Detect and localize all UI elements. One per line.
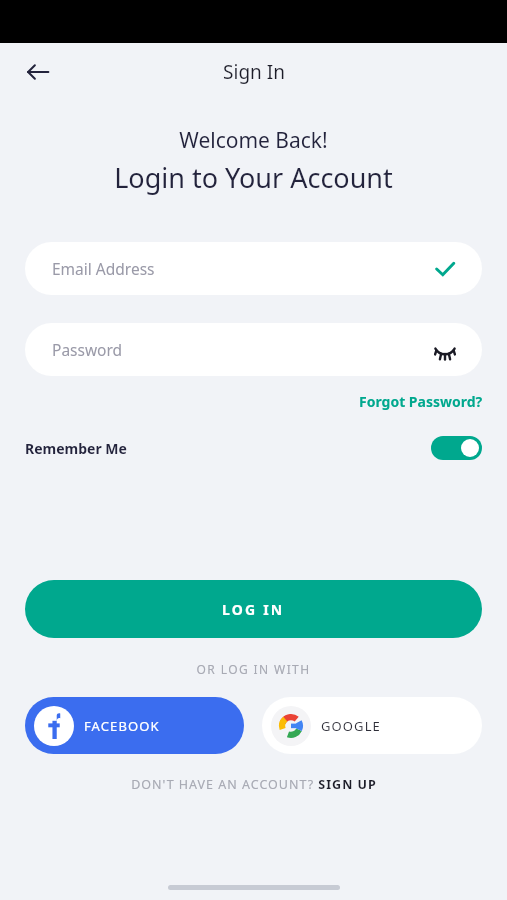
button[interactable]: Show password: [430, 335, 460, 365]
button[interactable]: Forgot Password?: [357, 390, 485, 413]
staticText: FACEBOOK: [84, 717, 160, 735]
staticText: DON'T HAVE AN ACCOUNT? SIGN UP: [131, 776, 377, 793]
staticText: Email Address: [52, 258, 155, 279]
staticText: LOG IN: [222, 600, 285, 619]
button[interactable]: DON'T HAVE AN ACCOUNT? SIGN UP: [0, 776, 507, 793]
staticText: Password: [52, 339, 123, 360]
button[interactable]: GOOGLE: [262, 697, 482, 754]
staticText: Login to Your Account: [0, 159, 507, 196]
button[interactable]: Back: [16, 50, 60, 94]
staticText: GOOGLE: [321, 717, 381, 735]
button[interactable]: LOG IN: [25, 580, 482, 638]
staticText: Forgot Password?: [359, 392, 483, 411]
button[interactable]: Email Address: [25, 242, 482, 295]
button[interactable]: Remember me toggle: [431, 436, 482, 460]
button[interactable]: Remember Me: [25, 433, 482, 463]
button[interactable]: FACEBOOK: [25, 697, 244, 754]
staticText: Remember Me: [25, 439, 127, 458]
button[interactable]: Password: [25, 323, 482, 376]
staticText: OR LOG IN WITH: [0, 661, 507, 677]
staticText: Welcome Back!: [0, 126, 507, 155]
button[interactable]: Valid email: [430, 254, 460, 284]
staticText: Sign In: [223, 59, 285, 85]
